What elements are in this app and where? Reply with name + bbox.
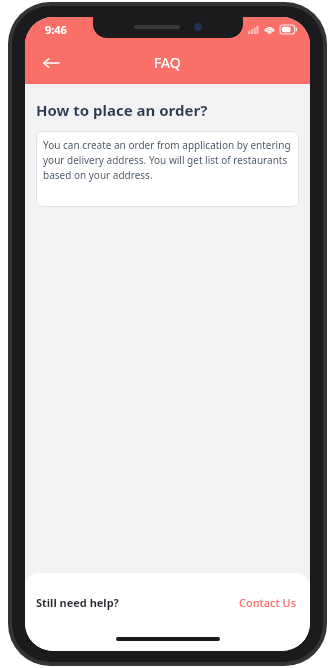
staticText: Contact Us	[239, 595, 297, 610]
button[interactable]: Back	[31, 43, 71, 83]
staticText: FAQ	[154, 53, 181, 72]
button[interactable]: You can create an order from application…	[36, 131, 299, 207]
staticText: How to place an order?	[36, 100, 208, 120]
staticText: You can create an order from application…	[43, 138, 292, 182]
staticText: Still need help?	[36, 595, 119, 610]
staticText: 9:46	[45, 22, 67, 37]
button[interactable]: Contact Us	[237, 593, 299, 612]
